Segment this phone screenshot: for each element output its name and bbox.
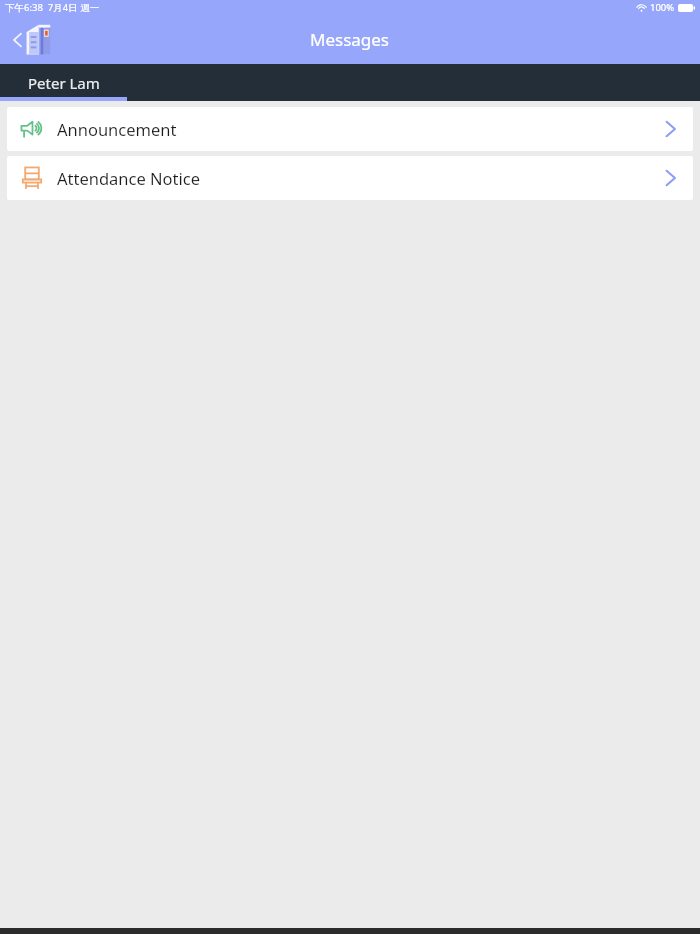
staticText: 下午6:38 7月4日 週一 [5, 1, 100, 14]
button[interactable]: Attendance Notice [7, 156, 693, 200]
staticText: Messages [310, 28, 390, 51]
staticText: 100% [650, 1, 675, 14]
staticText: Attendance Notice [57, 167, 201, 189]
button[interactable]: Peter Lam [0, 64, 127, 101]
staticText: Announcement [57, 118, 177, 140]
button[interactable]: Back [10, 18, 58, 62]
button[interactable]: Announcement [7, 107, 693, 151]
staticText: Peter Lam [28, 73, 100, 93]
